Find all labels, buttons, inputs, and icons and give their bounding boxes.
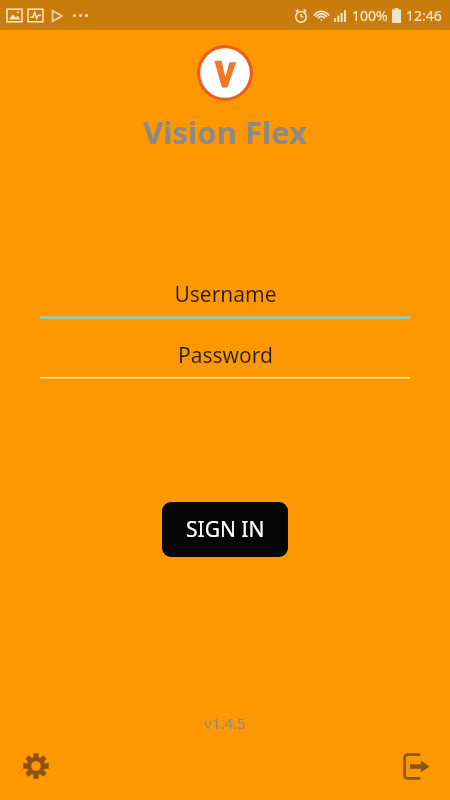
staticText: 12:46 bbox=[406, 6, 442, 25]
staticText: Vision Flex bbox=[143, 111, 307, 153]
button[interactable]: Settings bbox=[14, 744, 58, 788]
staticText: Password bbox=[178, 341, 273, 370]
staticText: SIGN IN bbox=[186, 515, 265, 544]
staticText: Username bbox=[174, 280, 277, 309]
button[interactable]: Username bbox=[40, 280, 410, 320]
button[interactable]: SIGN IN bbox=[162, 502, 288, 557]
button[interactable]: Exit bbox=[394, 744, 438, 788]
staticText: v1.4.5 bbox=[204, 713, 246, 733]
button[interactable]: Password bbox=[40, 341, 410, 381]
staticText: 100% bbox=[352, 6, 388, 25]
